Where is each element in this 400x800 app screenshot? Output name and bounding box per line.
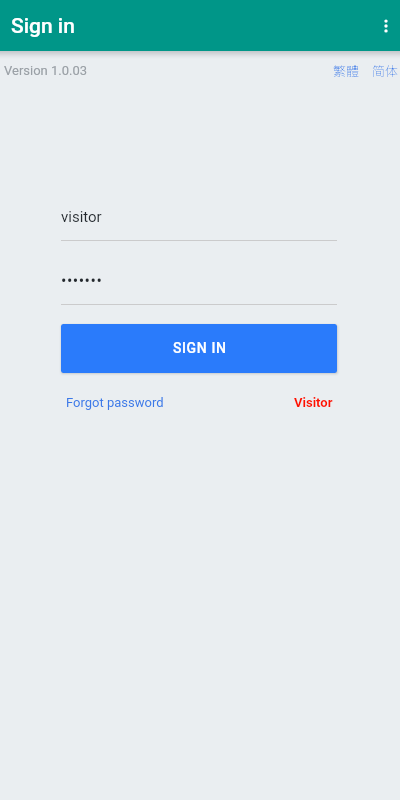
staticText: 繁體 [333,61,360,80]
staticText: Version 1.0.03 [4,63,88,78]
button[interactable]: More options [364,4,400,48]
staticText: Sign in [11,14,75,39]
staticText: ••••••• [61,271,103,290]
button[interactable]: SIGN IN [61,324,337,373]
button[interactable]: Forgot password [61,395,164,410]
button[interactable]: Password [61,267,337,304]
staticText: Forgot password [66,395,164,410]
button[interactable]: 简体 [369,58,400,83]
button[interactable]: Visitor [294,395,337,410]
staticText: Visitor [294,395,333,410]
staticText: visitor [61,208,102,226]
button[interactable]: 繁體 [330,58,363,83]
staticText: 简体 [372,61,399,80]
staticText: SIGN IN [173,340,227,356]
button[interactable]: visitor [61,203,337,240]
